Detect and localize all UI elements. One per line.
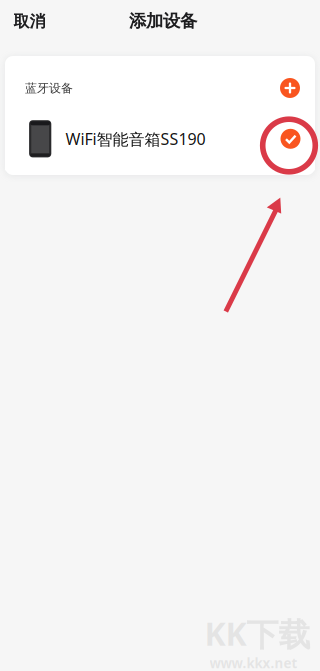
button[interactable]: Add device [280,78,300,98]
staticText: 添加设备 [129,10,197,32]
button[interactable]: WiFi智能音箱SS190 [5,107,315,170]
button[interactable]: 取消 [0,2,58,41]
staticText: www.kkx.net [209,654,297,671]
staticText: WiFi智能音箱SS190 [65,128,205,149]
staticText: KK下载 [204,612,310,655]
staticText: 蓝牙设备 [25,81,73,96]
staticText: 取消 [13,12,45,31]
